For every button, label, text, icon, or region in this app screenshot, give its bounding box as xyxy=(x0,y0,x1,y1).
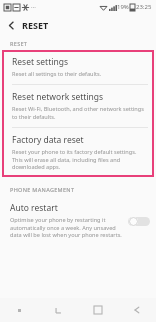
button[interactable]: Reset network settings xyxy=(2,85,154,127)
staticText: RESET xyxy=(22,19,49,31)
staticText: Factory data reset xyxy=(12,134,84,146)
staticText: Reset your phone to its factory default … xyxy=(12,148,148,171)
staticText: Reset Wi-Fi, Bluetooth, and other networ… xyxy=(12,105,148,121)
staticText: PHONE MANAGEMENT xyxy=(10,186,75,193)
button[interactable]: Back xyxy=(117,298,156,322)
staticText: 23:25 xyxy=(136,3,152,11)
staticText: Auto restart xyxy=(10,202,58,214)
staticText: Reset all settings to their defaults. xyxy=(12,70,102,78)
button[interactable]: Auto restart xyxy=(0,196,156,245)
staticText: 19% xyxy=(117,3,129,11)
button[interactable]: Home xyxy=(78,298,117,322)
button[interactable]: Recents xyxy=(39,298,78,322)
button[interactable]: Auto restart toggle xyxy=(128,215,150,227)
staticText: Reset settings xyxy=(12,56,68,68)
staticText: RESET xyxy=(10,40,28,47)
button[interactable]: Menu xyxy=(0,298,39,322)
button[interactable]: Back xyxy=(0,14,22,36)
staticText: Optimise your phone by restarting it aut… xyxy=(10,216,124,239)
staticText: ··· xyxy=(31,3,36,11)
staticText: Reset network settings xyxy=(12,91,104,103)
button[interactable]: Factory data reset xyxy=(2,128,154,177)
button[interactable]: Reset settings xyxy=(2,50,154,84)
